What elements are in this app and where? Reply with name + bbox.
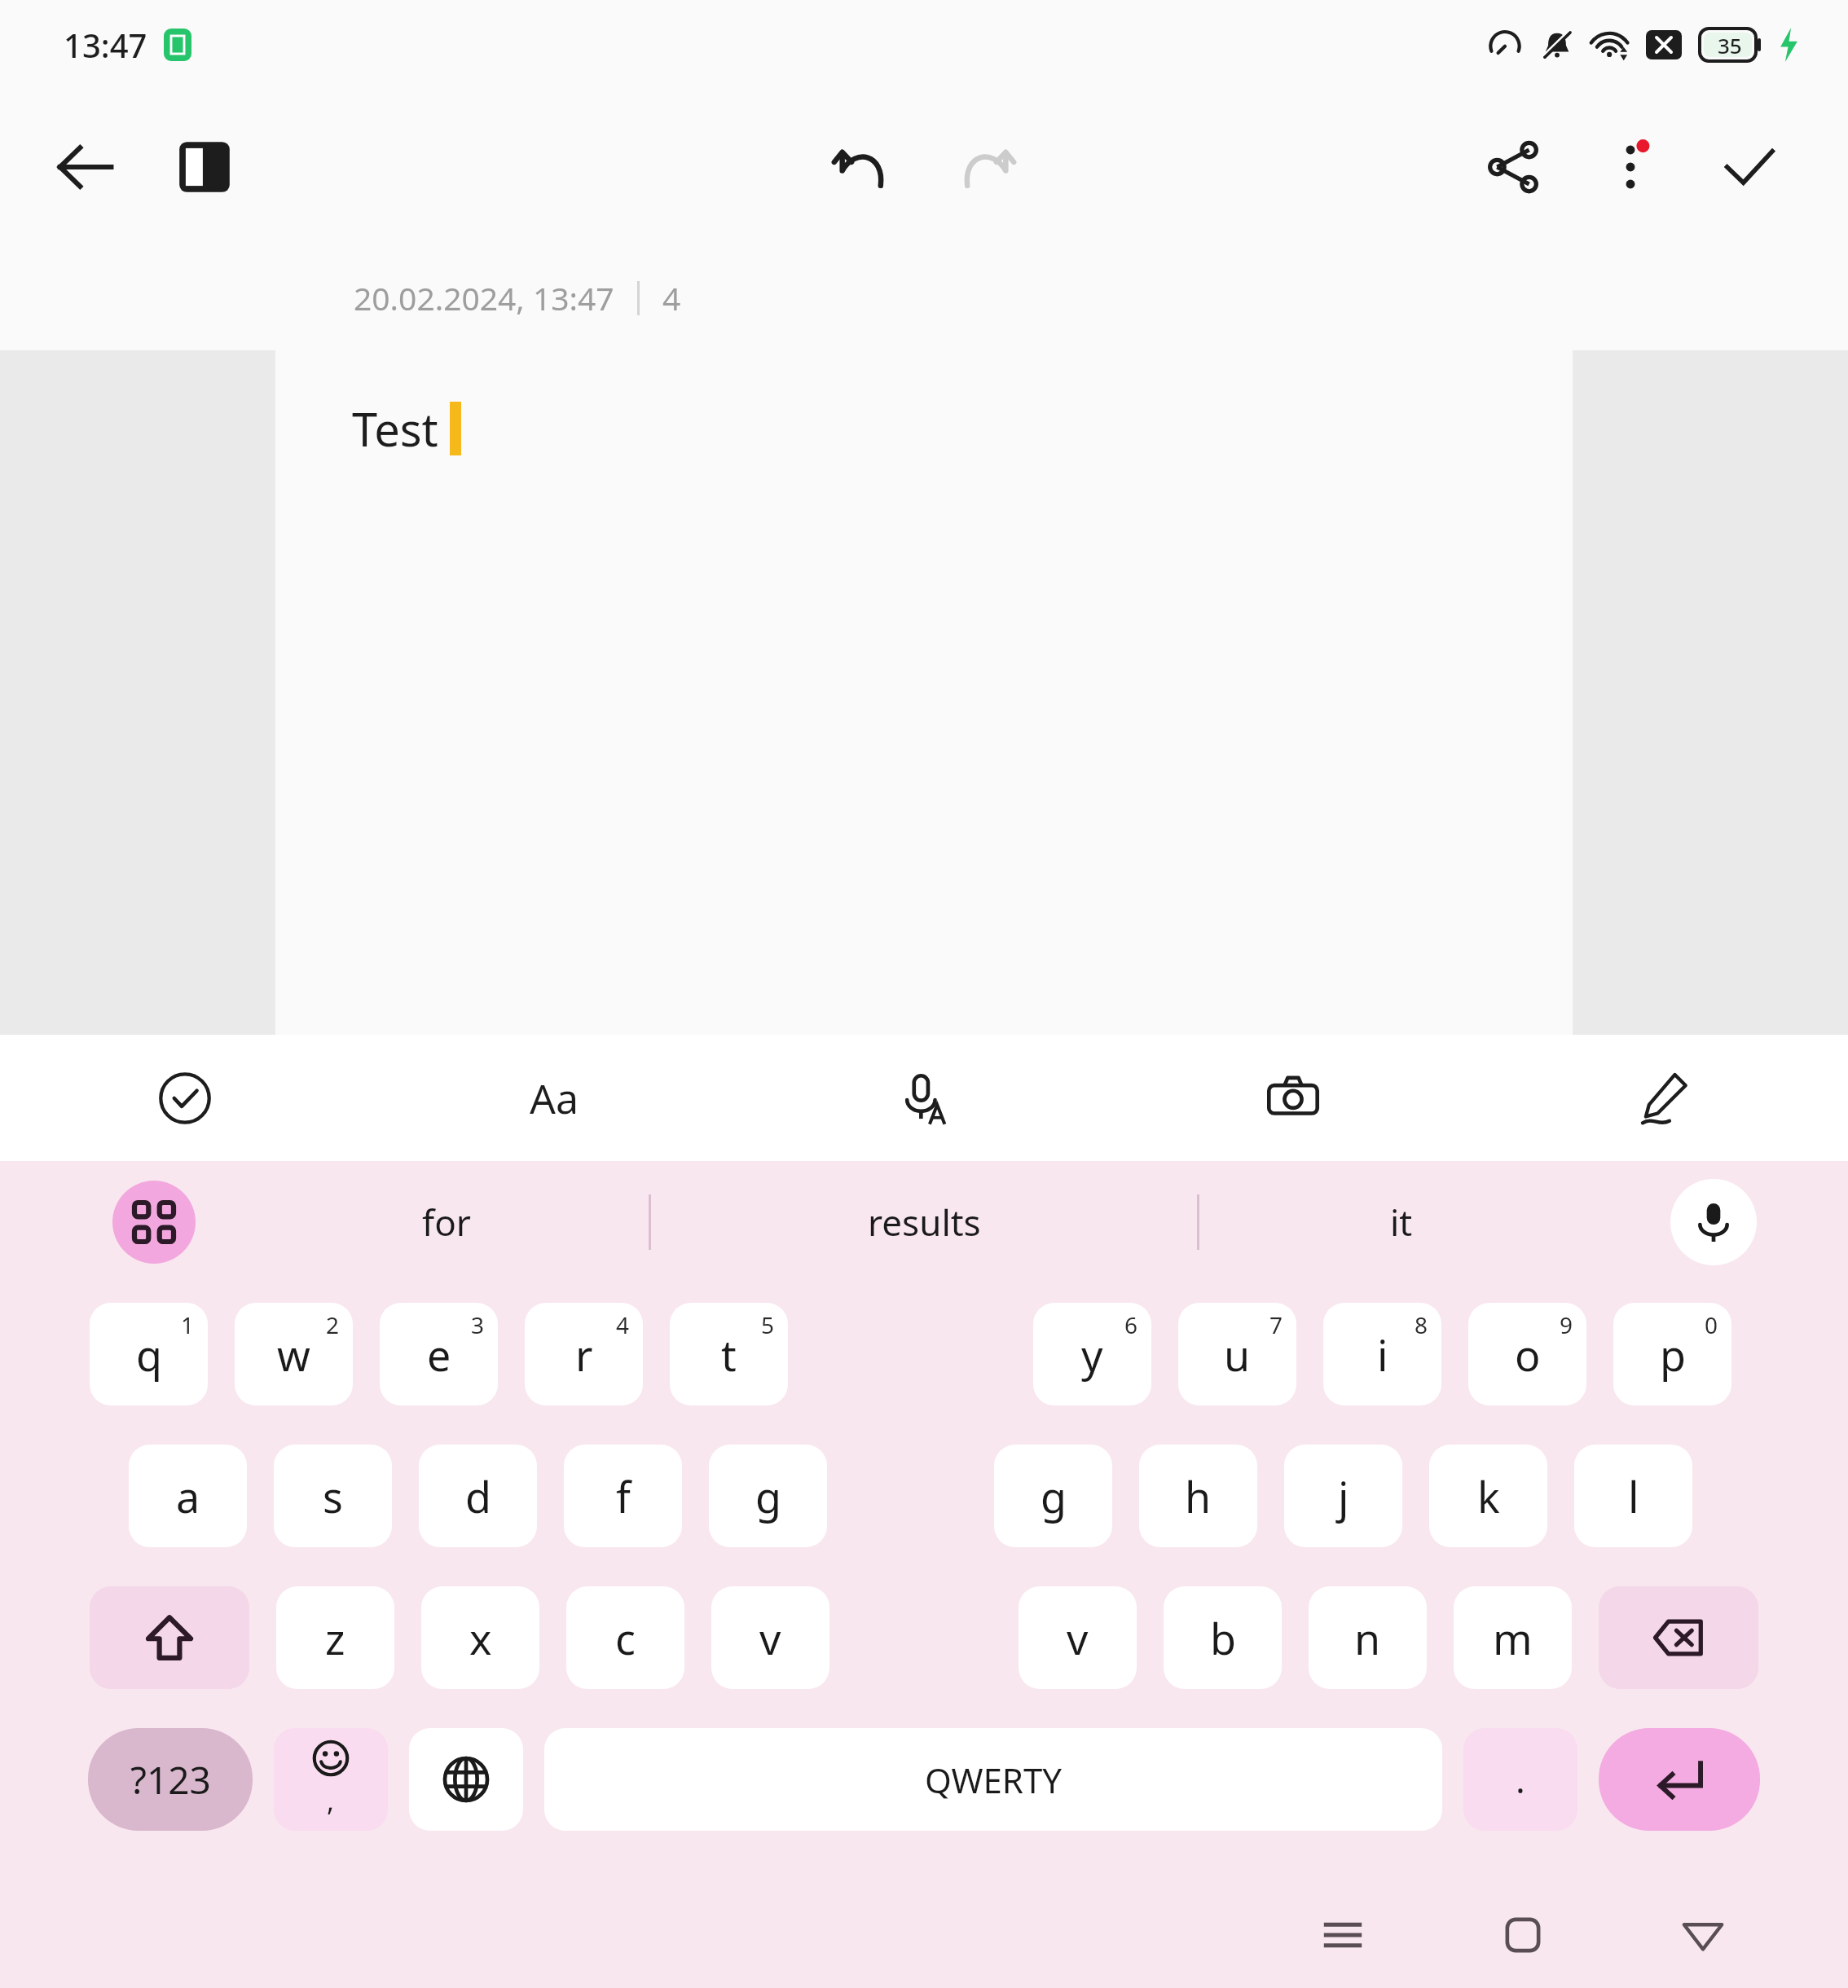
button[interactable]: . [1463, 1728, 1577, 1831]
button[interactable]: s [274, 1445, 392, 1547]
button[interactable]: w [235, 1303, 353, 1405]
staticText: 1 [181, 1309, 195, 1340]
button[interactable]: Checklist [0, 1035, 369, 1161]
button[interactable]: Change language [409, 1728, 523, 1831]
staticText: results [868, 1198, 981, 1247]
staticText: . [1516, 1755, 1525, 1804]
button[interactable]: x [421, 1586, 539, 1689]
button[interactable]: t [670, 1303, 788, 1405]
staticText: v [759, 1609, 781, 1667]
button[interactable]: j [1284, 1445, 1402, 1547]
staticText: n [1354, 1609, 1381, 1667]
button[interactable]: Toggle side panel [166, 129, 243, 205]
staticText: 2 [326, 1309, 340, 1340]
button[interactable]: Emoji [274, 1728, 388, 1831]
staticText: h [1185, 1467, 1212, 1525]
button[interactable]: Shift [90, 1586, 249, 1689]
button[interactable]: Back [1664, 1896, 1742, 1974]
button[interactable]: g [709, 1445, 827, 1547]
staticText: for [422, 1198, 471, 1247]
staticText: v [1067, 1609, 1089, 1667]
button[interactable]: for [244, 1161, 649, 1283]
button[interactable]: Keyboard modes [112, 1181, 196, 1264]
button[interactable]: Back [46, 128, 124, 206]
staticText: 4 [662, 276, 681, 319]
button[interactable]: results [651, 1161, 1197, 1283]
button[interactable]: Backspace [1599, 1586, 1758, 1689]
staticText: k [1477, 1467, 1500, 1525]
staticText: w [277, 1326, 310, 1383]
button[interactable]: f [564, 1445, 682, 1547]
button[interactable]: Voice input [738, 1035, 1108, 1161]
button[interactable]: r [525, 1303, 643, 1405]
button[interactable]: q [90, 1303, 208, 1405]
staticText: Test [352, 398, 438, 460]
button[interactable]: v [711, 1586, 829, 1689]
button[interactable]: Text format [369, 1035, 738, 1161]
staticText: s [323, 1467, 343, 1525]
staticText: t [721, 1326, 737, 1383]
button[interactable]: n [1309, 1586, 1427, 1689]
staticText: 13:47 [64, 23, 147, 67]
staticText: ?123 [130, 1754, 211, 1805]
button[interactable]: Recents [1304, 1896, 1382, 1974]
staticText: a [176, 1467, 200, 1525]
staticText: b [1210, 1609, 1236, 1667]
button[interactable]: Enter [1599, 1728, 1760, 1831]
button[interactable]: QWERTY [544, 1728, 1442, 1831]
button[interactable]: h [1139, 1445, 1257, 1547]
button[interactable]: o [1468, 1303, 1586, 1405]
staticText: 4 [616, 1309, 630, 1340]
staticText: l [1628, 1467, 1639, 1525]
staticText: 0 [1705, 1309, 1718, 1340]
button[interactable]: u [1178, 1303, 1296, 1405]
button[interactable]: l [1574, 1445, 1692, 1547]
button[interactable]: ?123 [88, 1728, 253, 1831]
staticText: g [1041, 1467, 1067, 1525]
button[interactable]: Draw [1478, 1035, 1848, 1161]
staticText: 7 [1269, 1309, 1283, 1340]
staticText: 6 [1124, 1309, 1138, 1340]
button[interactable]: e [380, 1303, 498, 1405]
staticText: g [755, 1467, 781, 1525]
staticText: 20.02.2024, 13:47 [354, 276, 614, 319]
button[interactable]: Voice input [1670, 1179, 1757, 1265]
staticText: r [575, 1326, 593, 1383]
button[interactable]: More options [1592, 129, 1669, 205]
staticText: d [465, 1467, 491, 1525]
button[interactable]: Camera [1108, 1035, 1478, 1161]
button[interactable]: g [994, 1445, 1112, 1547]
button[interactable]: y [1033, 1303, 1151, 1405]
staticText: i [1377, 1326, 1388, 1383]
button[interactable]: Redo [945, 126, 1027, 208]
staticText: 9 [1560, 1309, 1573, 1340]
staticText: 35 [1718, 31, 1742, 59]
button[interactable]: Undo [821, 126, 903, 208]
staticText: x [469, 1609, 492, 1667]
button[interactable]: a [129, 1445, 247, 1547]
button[interactable]: b [1164, 1586, 1282, 1689]
button[interactable]: Share [1475, 129, 1551, 205]
staticText: f [616, 1467, 631, 1525]
button[interactable]: it [1199, 1161, 1604, 1283]
staticText: 3 [471, 1309, 485, 1340]
staticText: QWERTY [925, 1757, 1063, 1803]
button[interactable]: Home [1484, 1896, 1562, 1974]
staticText: it [1390, 1198, 1413, 1247]
button[interactable]: Done [1709, 127, 1789, 207]
staticText: u [1224, 1326, 1251, 1383]
staticText: j [1338, 1467, 1349, 1525]
button[interactable]: v [1019, 1586, 1137, 1689]
button[interactable]: d [419, 1445, 537, 1547]
staticText: c [615, 1609, 636, 1667]
staticText: , [327, 1782, 335, 1819]
button[interactable]: m [1454, 1586, 1572, 1689]
button[interactable]: c [566, 1586, 684, 1689]
button[interactable]: i [1323, 1303, 1441, 1405]
staticText: m [1493, 1609, 1533, 1667]
button[interactable]: z [276, 1586, 394, 1689]
button[interactable]: k [1429, 1445, 1547, 1547]
button[interactable]: p [1613, 1303, 1731, 1405]
staticText: Aa [530, 1071, 579, 1126]
staticText: y [1081, 1326, 1103, 1383]
